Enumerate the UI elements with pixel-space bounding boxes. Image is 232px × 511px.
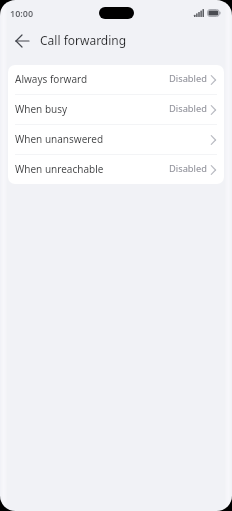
staticText: Call forwarding <box>40 32 127 48</box>
button[interactable]: Back <box>8 27 36 55</box>
staticText: Disabled <box>169 72 207 85</box>
button[interactable]: When unanswered <box>8 125 224 154</box>
staticText: When busy <box>15 102 68 116</box>
staticText: Disabled <box>169 102 207 115</box>
staticText: Disabled <box>169 162 207 175</box>
staticText: When unanswered <box>15 132 104 146</box>
staticText: Always forward <box>15 72 88 86</box>
button[interactable]: Always forward <box>8 65 224 94</box>
staticText: 10:00 <box>10 7 34 19</box>
button[interactable]: When unreachable <box>8 155 224 184</box>
button[interactable]: When busy <box>8 95 224 124</box>
staticText: When unreachable <box>15 162 104 176</box>
